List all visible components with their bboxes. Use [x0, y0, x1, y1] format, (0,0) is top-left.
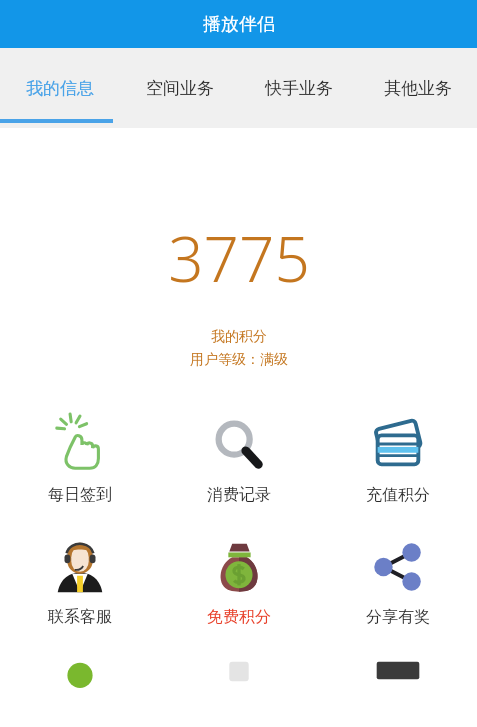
button[interactable]: 每日签到 [0, 409, 159, 505]
button[interactable]: Tasks [159, 651, 318, 723]
button[interactable]: 其他业务 [358, 48, 477, 128]
staticText: 充值积分 [366, 485, 430, 505]
button[interactable]: 免费积分 [159, 531, 318, 627]
staticText: 免费积分 [207, 607, 271, 627]
staticText: 用户等级：满级 [190, 351, 288, 369]
staticText: 我的积分 [211, 328, 267, 346]
button[interactable]: 联系客服 [0, 531, 159, 627]
staticText: 播放伴侣 [203, 13, 275, 36]
button[interactable]: 充值积分 [318, 409, 477, 505]
staticText: 分享有奖 [366, 607, 430, 627]
staticText: 消费记录 [207, 485, 271, 505]
staticText: 快手业务 [265, 78, 333, 99]
staticText: 联系客服 [48, 607, 112, 627]
button[interactable]: More [318, 651, 477, 723]
staticText: 我的信息 [26, 78, 94, 99]
staticText: 空间业务 [146, 78, 214, 99]
staticText: 每日签到 [48, 485, 112, 505]
button[interactable]: Rewards [0, 651, 159, 723]
button[interactable]: 消费记录 [159, 409, 318, 505]
staticText: 3775 [168, 216, 310, 300]
staticText: 其他业务 [384, 78, 452, 99]
button[interactable]: 快手业务 [239, 48, 358, 128]
button[interactable]: 分享有奖 [318, 531, 477, 627]
button[interactable]: 空间业务 [120, 48, 239, 128]
button[interactable]: 我的信息 [0, 48, 120, 128]
